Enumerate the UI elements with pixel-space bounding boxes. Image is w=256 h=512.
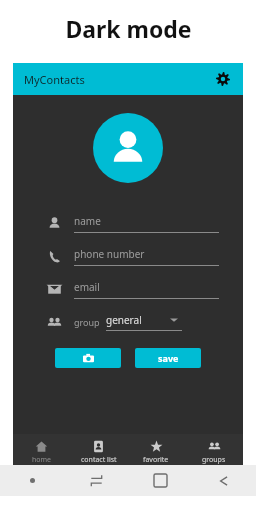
staticText: favorite bbox=[143, 455, 169, 465]
button[interactable]: phone number bbox=[74, 247, 219, 266]
staticText: email bbox=[74, 280, 100, 294]
staticText: name bbox=[74, 214, 101, 228]
staticText: save bbox=[158, 352, 179, 364]
staticText: MyContacts bbox=[24, 72, 85, 87]
button[interactable]: home bbox=[13, 434, 70, 470]
button[interactable]: Settings bbox=[211, 67, 235, 91]
staticText: contact list bbox=[81, 455, 117, 465]
staticText: phone number bbox=[74, 247, 145, 261]
button[interactable]: Contact photo bbox=[93, 113, 163, 183]
button[interactable]: Back bbox=[192, 474, 256, 488]
staticText: general bbox=[106, 313, 142, 327]
button[interactable]: save bbox=[135, 348, 201, 368]
button[interactable]: general bbox=[106, 313, 182, 331]
button[interactable]: Take photo bbox=[55, 348, 121, 368]
staticText: group bbox=[74, 316, 100, 328]
button[interactable]: favorite bbox=[127, 434, 185, 470]
button[interactable]: email bbox=[74, 280, 219, 299]
staticText: home bbox=[32, 455, 52, 465]
staticText: Dark mode bbox=[65, 13, 192, 44]
button[interactable]: contact list bbox=[70, 434, 127, 470]
button[interactable]: Home bbox=[128, 474, 192, 487]
button[interactable]: groups bbox=[185, 434, 243, 470]
button[interactable]: Recent bbox=[64, 474, 128, 487]
staticText: groups bbox=[202, 455, 226, 465]
button[interactable]: name bbox=[74, 214, 219, 233]
